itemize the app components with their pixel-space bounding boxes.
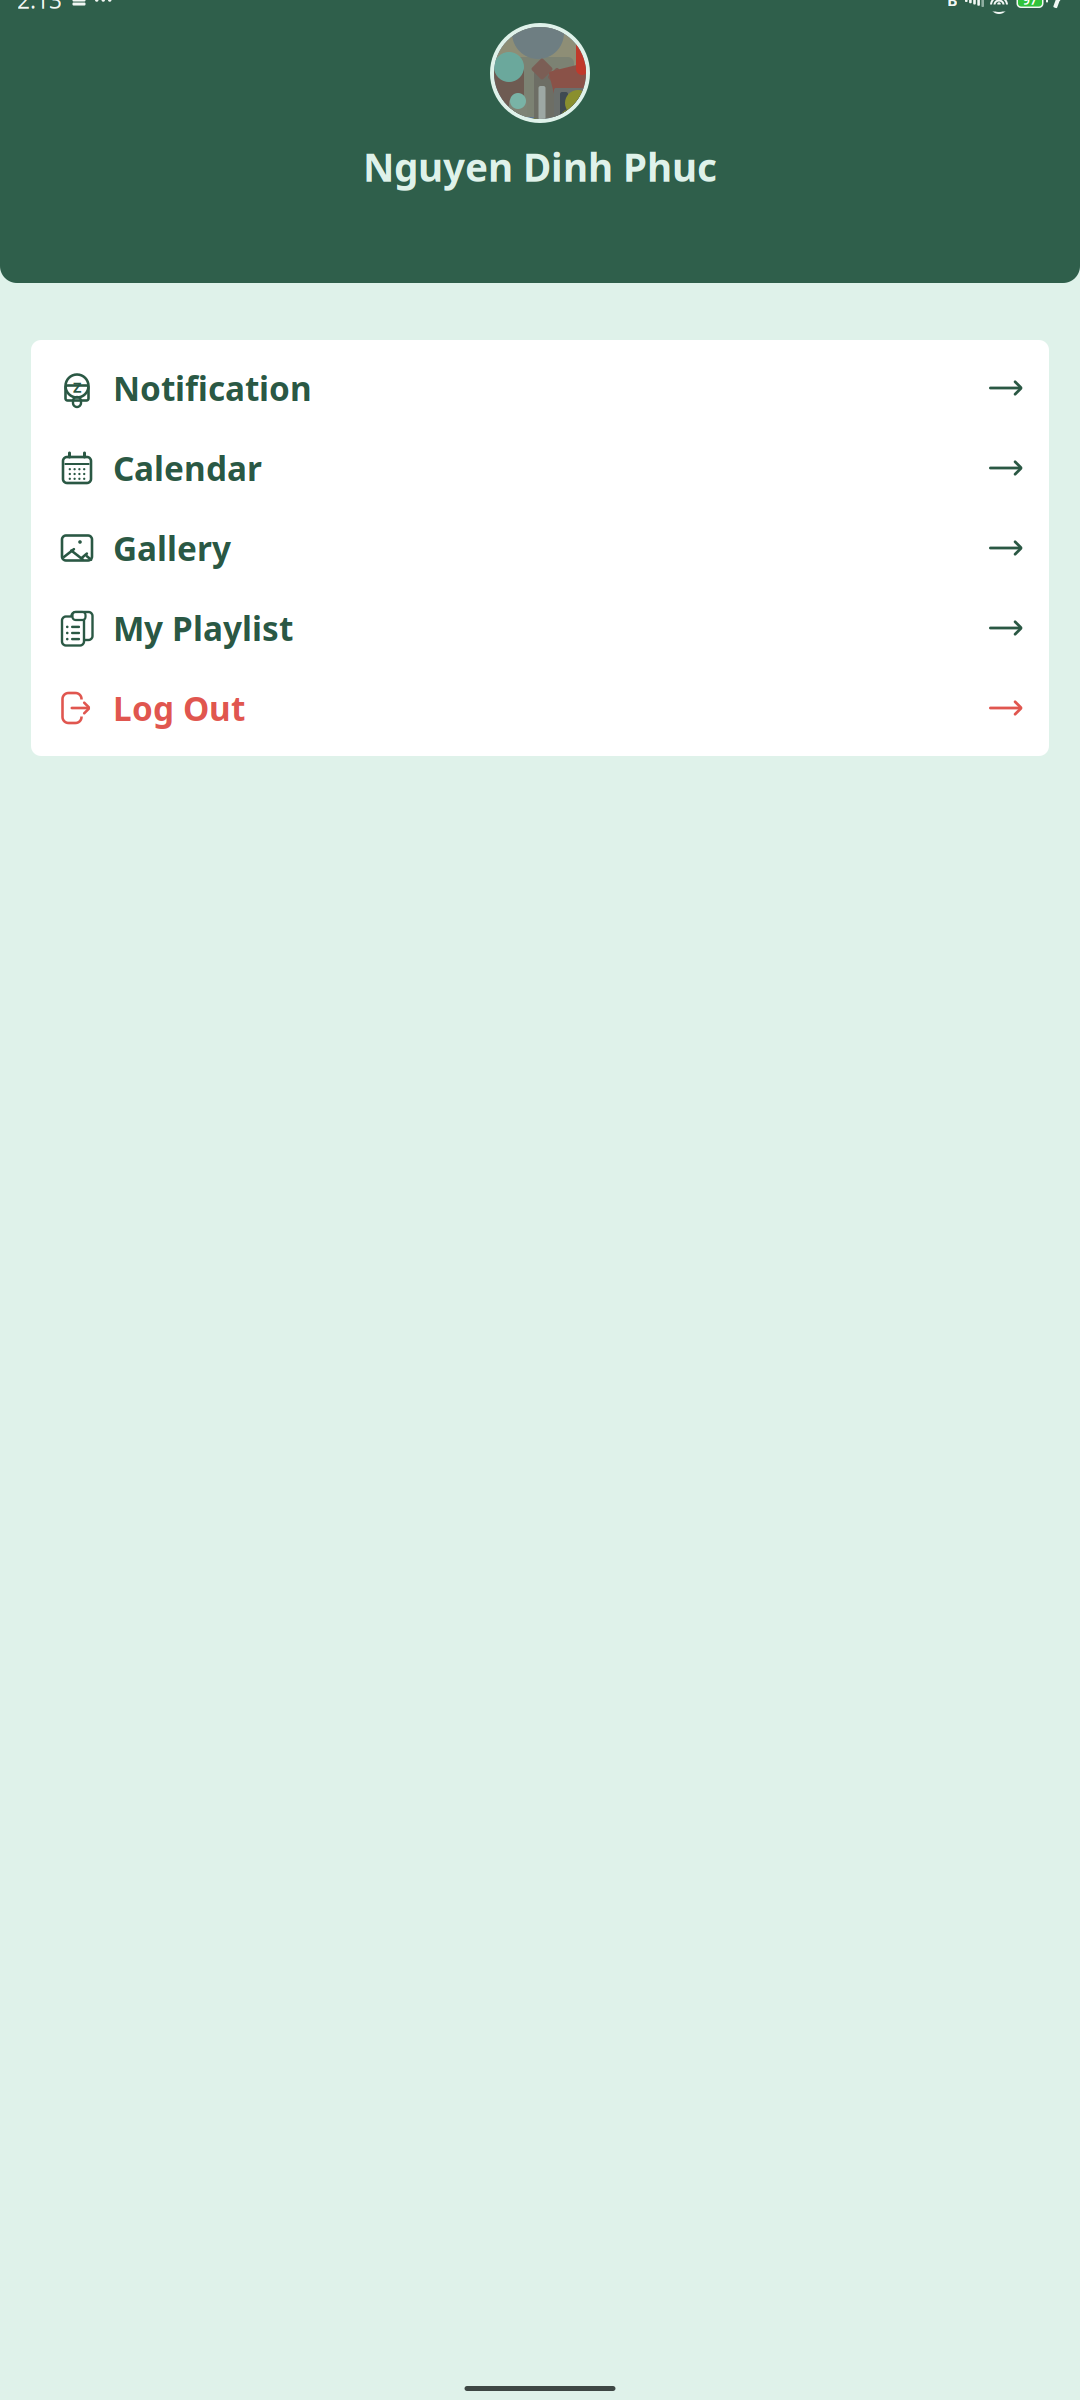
staticText: My Playlist [113,606,293,650]
staticText: 97 [1023,0,1037,8]
button[interactable]: My Playlist [31,588,1049,668]
staticText: Nguyen Dinh Phuc [363,141,717,192]
button[interactable]: Gallery [31,508,1049,588]
staticText: Notification [113,366,312,410]
staticText: 2:13 [17,0,62,15]
button[interactable]: Z [31,348,1049,428]
staticText: Calendar [113,446,262,490]
button[interactable]: Log Out [31,668,1049,748]
button[interactable]: Calendar [31,428,1049,508]
staticText: B [947,0,958,11]
staticText: Log Out [113,686,245,730]
staticText: Gallery [113,526,231,570]
staticText: Z [73,377,81,397]
